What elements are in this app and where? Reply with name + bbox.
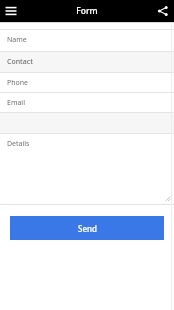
- staticText: Details: [7, 139, 30, 149]
- button[interactable]: Phone: [0, 73, 174, 92]
- button[interactable]: Share: [152, 0, 174, 22]
- staticText: Form: [76, 5, 98, 17]
- staticText: Contact: [7, 57, 33, 67]
- staticText: Send: [78, 223, 97, 234]
- button[interactable]: Open navigation menu: [0, 0, 22, 22]
- button[interactable]: Email: [0, 93, 174, 112]
- staticText: Phone: [7, 78, 29, 88]
- staticText: Email: [7, 98, 25, 108]
- staticText: Name: [7, 35, 27, 45]
- button[interactable]: Name: [0, 30, 174, 51]
- button[interactable]: Details: [0, 134, 174, 204]
- button[interactable]: Send: [10, 216, 164, 240]
